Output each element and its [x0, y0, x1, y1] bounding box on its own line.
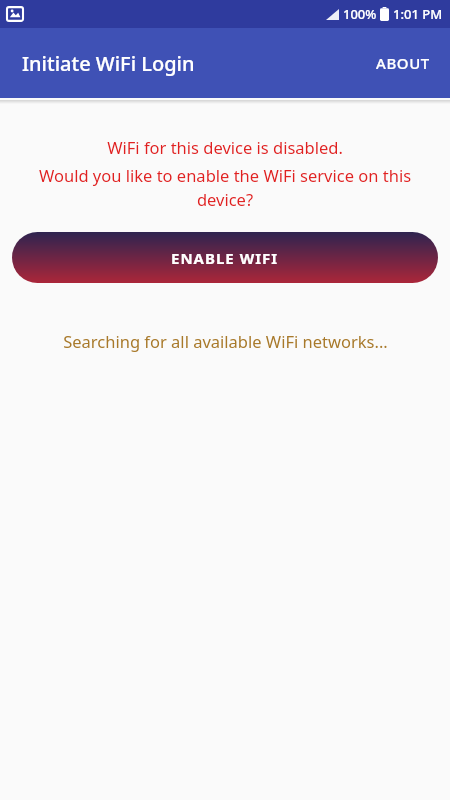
- staticText: ABOUT: [376, 53, 430, 73]
- staticText: Searching for all available WiFi network…: [63, 330, 388, 352]
- staticText: ENABLE WIFI: [171, 248, 279, 268]
- staticText: Initiate WiFi Login: [22, 50, 195, 77]
- button[interactable]: ENABLE WIFI: [12, 232, 438, 283]
- button[interactable]: ABOUT: [364, 43, 442, 83]
- staticText: Would you like to enable the WiFi servic…: [10, 164, 440, 211]
- staticText: WiFi for this device is disabled.: [107, 136, 343, 158]
- staticText: 100%: [343, 5, 377, 23]
- staticText: 1:01 PM: [393, 5, 443, 23]
- other: Screenshot saved: [7, 6, 23, 22]
